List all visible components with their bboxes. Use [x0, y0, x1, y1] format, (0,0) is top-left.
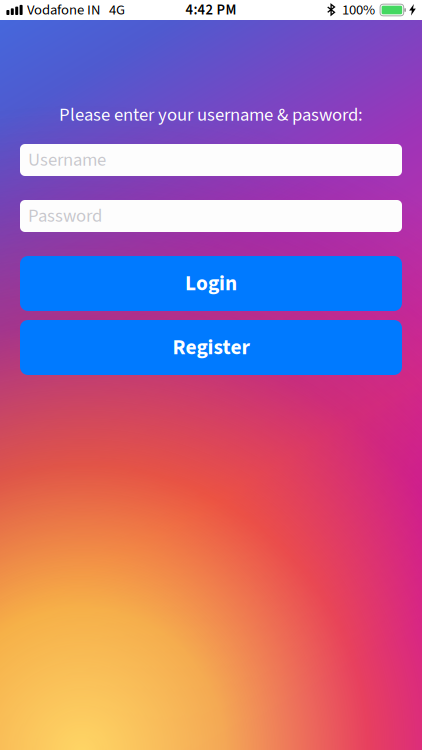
button[interactable]: Username — [20, 144, 402, 176]
staticText: Please enter your username & pasword: — [59, 102, 363, 128]
staticText: 4G — [109, 0, 125, 20]
staticText: Vodafone IN — [27, 0, 100, 20]
staticText: Login — [185, 268, 237, 299]
button[interactable]: Password — [20, 200, 402, 232]
staticText: 100% — [342, 0, 375, 20]
staticText: Username — [28, 147, 106, 173]
staticText: 4:42 PM — [185, 0, 236, 20]
staticText: Register — [172, 332, 249, 363]
button[interactable]: Register — [20, 320, 402, 375]
button[interactable]: Login — [20, 256, 402, 311]
staticText: Password — [28, 203, 102, 229]
